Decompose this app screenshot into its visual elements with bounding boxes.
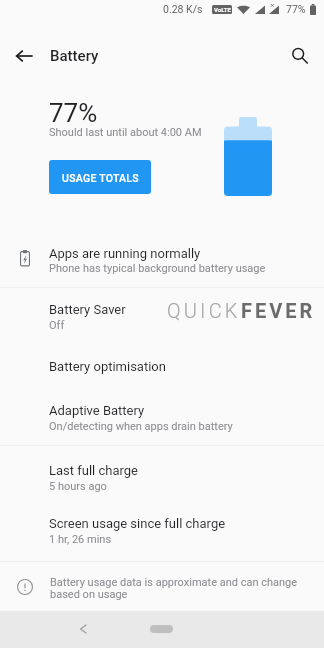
button[interactable]: [0, 345, 324, 388]
staticText: Battery usage data is approximate and ca…: [50, 576, 298, 589]
staticText: QUICK: [167, 299, 241, 322]
staticText: FEVER: [241, 299, 316, 322]
staticText: 77%: [286, 3, 306, 15]
button[interactable]: Search: [280, 36, 320, 76]
button[interactable]: [0, 388, 324, 445]
staticText: Off: [49, 319, 65, 332]
staticText: Battery Saver: [49, 302, 126, 317]
staticText: based on usage: [50, 588, 128, 601]
staticText: 1 hr, 26 mins: [49, 533, 112, 546]
staticText: 5 hours ago: [49, 480, 107, 493]
button[interactable]: USAGE TOTALS: [49, 160, 151, 194]
button[interactable]: Home: [150, 625, 173, 633]
staticText: Last full charge: [49, 463, 139, 478]
staticText: On/detecting when apps drain battery: [49, 420, 233, 433]
staticText: USAGE TOTALS: [62, 172, 139, 184]
staticText: VoLTE: [214, 6, 231, 13]
button[interactable]: [0, 503, 324, 561]
staticText: Apps are running normally: [49, 246, 201, 261]
staticText: Screen usage since full charge: [49, 516, 226, 531]
staticText: Should last until about 4:00 AM: [49, 126, 202, 139]
staticText: Phone has typical background battery usa…: [49, 262, 266, 275]
button[interactable]: Back: [4, 36, 44, 76]
button[interactable]: Back: [70, 616, 95, 641]
staticText: Battery optimisation: [49, 359, 166, 374]
staticText: 0.28 K/s: [163, 3, 203, 15]
button[interactable]: [0, 228, 324, 286]
button[interactable]: [0, 288, 324, 345]
staticText: Battery: [50, 47, 99, 65]
staticText: Adaptive Battery: [49, 403, 145, 418]
button[interactable]: [0, 446, 324, 503]
staticText: 77%: [49, 98, 98, 128]
